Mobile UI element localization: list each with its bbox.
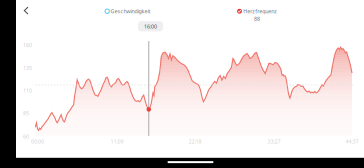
staticText: Herzfrequenz — [243, 8, 277, 15]
button[interactable]: Back — [20, 4, 38, 22]
staticText: 33:27 — [267, 138, 280, 145]
staticText: 16:00 — [144, 23, 157, 30]
staticText: 22:18 — [188, 138, 201, 145]
button[interactable]: Geschwindigkeit — [105, 8, 151, 15]
staticText: 85 — [23, 110, 29, 117]
staticText: 160 — [23, 41, 32, 49]
staticText: 135 — [23, 64, 32, 72]
staticText: 110 — [23, 87, 32, 94]
button[interactable]: Herzfrequenz — [237, 8, 277, 22]
staticText: 11:09 — [110, 138, 123, 145]
staticText: 88 — [254, 15, 260, 22]
staticText: 00:00 — [31, 138, 44, 145]
staticText: 60 — [23, 133, 29, 140]
staticText: Geschwindigkeit — [111, 8, 151, 15]
staticText: 44:37 — [345, 138, 358, 145]
